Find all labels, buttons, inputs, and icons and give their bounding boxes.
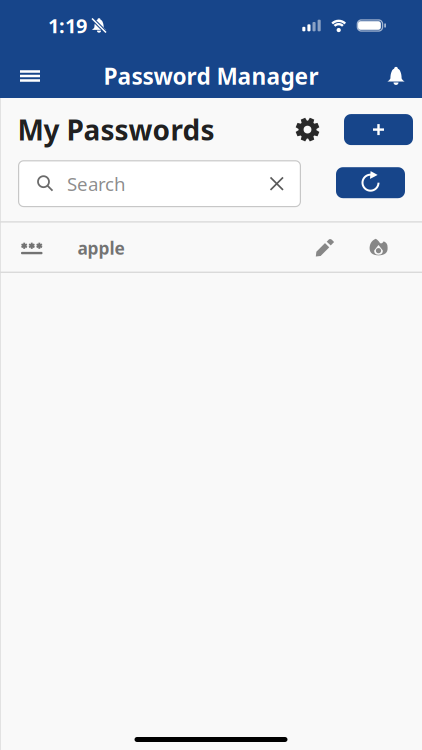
staticText: Password Manager [103, 61, 318, 91]
button[interactable]: Refresh [336, 168, 405, 199]
button[interactable]: Menu [0, 56, 50, 96]
staticText: My Passwords [17, 111, 214, 148]
staticText: Search [67, 171, 126, 196]
button[interactable]: Add password [344, 114, 413, 145]
staticText: 1:19 [48, 12, 87, 39]
button[interactable]: Delete [361, 223, 396, 272]
button[interactable]: apple [0, 236, 124, 259]
staticText: apple [77, 237, 124, 260]
button[interactable]: Clear search [258, 165, 295, 202]
button[interactable]: Edit [306, 222, 344, 272]
button[interactable]: Settings [295, 117, 320, 142]
button[interactable]: Notifications [377, 55, 422, 97]
